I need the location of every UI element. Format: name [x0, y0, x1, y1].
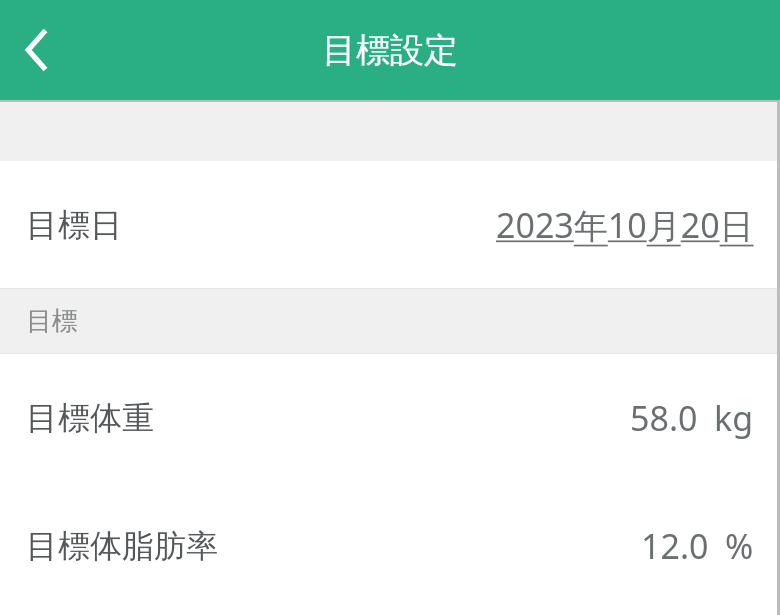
staticText: %	[725, 523, 754, 569]
button[interactable]: 目標体重	[0, 354, 780, 482]
button[interactable]: Back	[0, 0, 72, 100]
staticText: 2023年10月20日	[496, 202, 754, 248]
button[interactable]: 目標日	[0, 161, 780, 288]
staticText: 目標体脂肪率	[26, 526, 218, 566]
staticText: 目標	[26, 305, 78, 338]
staticText: 12.0	[641, 523, 709, 569]
staticText: 目標体重	[26, 398, 154, 438]
staticText: 58.0	[630, 395, 698, 441]
staticText: kg	[714, 395, 754, 441]
staticText: 目標設定	[322, 29, 458, 72]
staticText: 目標日	[26, 205, 122, 245]
button[interactable]: 目標体脂肪率	[0, 482, 780, 610]
